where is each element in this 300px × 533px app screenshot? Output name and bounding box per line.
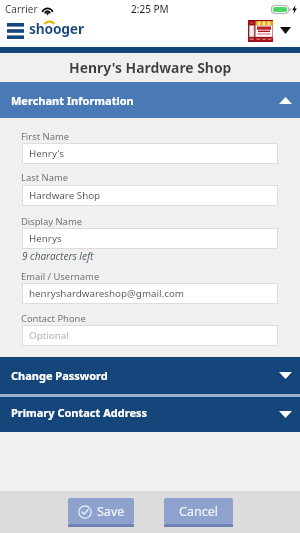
staticText: Display Name [21, 215, 82, 228]
button[interactable]: Change Password [0, 357, 300, 394]
staticText: Email / Username [21, 270, 100, 283]
staticText: Henry's Hardware Shop [69, 58, 232, 77]
button[interactable]: Hardware Shop [22, 185, 278, 206]
button[interactable]: Menu [3, 19, 27, 43]
staticText: Hardware Shop [29, 189, 101, 202]
button[interactable]: Optional [22, 325, 278, 346]
staticText: shooger [29, 19, 84, 38]
staticText: Contact Phone [21, 312, 86, 325]
staticText: Cancel [179, 503, 218, 520]
staticText: First Name [21, 130, 69, 143]
button[interactable]: Henry's [22, 143, 278, 164]
staticText: 9 characters left [22, 249, 94, 263]
staticText: Merchant Information [11, 93, 134, 108]
staticText: Save [97, 503, 125, 520]
button[interactable]: Henrys [22, 228, 278, 249]
button[interactable]: Henry's Hardware Shop [246, 18, 275, 44]
staticText: Change Password [11, 368, 108, 383]
button[interactable]: henryshardwareshop@gmail.com [22, 283, 278, 304]
staticText: 2:25 PM [131, 2, 169, 16]
staticText: Carrier [5, 2, 38, 16]
button[interactable]: Merchant Information [0, 82, 300, 118]
staticText: Henrys [29, 232, 62, 245]
staticText: Primary Contact Address [11, 405, 147, 420]
button[interactable]: Cancel [164, 498, 233, 524]
button[interactable]: Switch shop [275, 21, 296, 39]
staticText: Last Name [21, 171, 68, 184]
button[interactable]: Primary Contact Address [0, 397, 300, 432]
staticText: Henry's [29, 147, 64, 160]
staticText: Optional [29, 329, 69, 342]
button[interactable]: Save [68, 498, 134, 524]
staticText: henryshardwareshop@gmail.com [29, 287, 185, 300]
